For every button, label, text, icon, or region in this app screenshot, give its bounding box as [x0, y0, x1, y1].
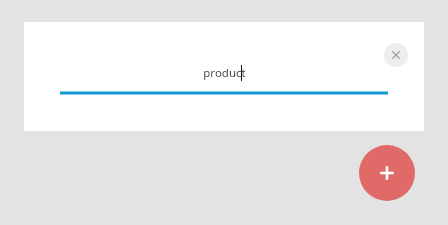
button[interactable]: product: [60, 60, 388, 86]
button[interactable]: Clear text: [384, 43, 408, 67]
staticText: product: [203, 65, 246, 81]
button[interactable]: Add: [359, 145, 415, 201]
